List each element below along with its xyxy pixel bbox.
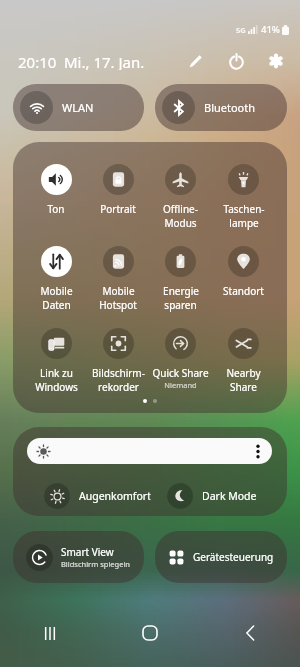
button[interactable]: Power [225, 52, 247, 70]
button[interactable]: WLAN [13, 84, 144, 131]
staticText: Link zu [40, 366, 73, 380]
staticText: Dark Mode [202, 489, 257, 503]
staticText: Quick Share [152, 366, 209, 380]
staticText: 20:10 [18, 52, 57, 70]
staticText: Offline- [163, 202, 198, 216]
staticText: Mi., 17. Jan. [64, 52, 145, 70]
staticText: Hotspot [99, 298, 137, 312]
staticText: lampe [229, 216, 259, 230]
button[interactable]: Brightness [27, 438, 272, 464]
staticText: Augenkomfort [79, 489, 151, 503]
button[interactable]: Nearby [212, 328, 275, 394]
button[interactable]: Settings [265, 52, 287, 70]
staticText: Bildschirm spiegeln [61, 559, 130, 569]
button[interactable]: Link zu [25, 328, 87, 394]
button[interactable]: Standort [212, 246, 275, 298]
staticText: Smart View [61, 545, 114, 559]
staticText: rekorder [98, 380, 139, 394]
staticText: sparen [164, 298, 197, 312]
staticText: Taschen- [223, 202, 265, 216]
button[interactable]: Offline- [149, 164, 212, 230]
staticText: Portrait [100, 202, 136, 216]
staticText: Mobile [102, 284, 135, 298]
staticText: 5G [236, 25, 246, 35]
button[interactable]: Bluetooth [155, 84, 287, 131]
button[interactable]: Dark Mode [167, 483, 257, 509]
staticText: Bildschirm- [92, 366, 145, 380]
button[interactable]: Mobile [87, 246, 149, 312]
staticText: WLAN [62, 100, 94, 115]
button[interactable]: Gerätesteuerung [155, 531, 287, 583]
button[interactable]: Smart View [13, 531, 144, 583]
staticText: Ton [47, 202, 65, 216]
button[interactable]: Quick Share [149, 328, 212, 390]
button[interactable]: Portrait [87, 164, 149, 216]
button[interactable]: Augenkomfort [44, 483, 151, 509]
staticText: Modus [164, 216, 197, 230]
staticText: Windows [35, 380, 78, 394]
button[interactable]: Taschen- [212, 164, 275, 230]
staticText: Mobile [40, 284, 73, 298]
staticText: Niemand [164, 380, 197, 390]
button[interactable]: Energie [149, 246, 212, 312]
staticText: Daten [42, 298, 71, 312]
staticText: Nearby [226, 366, 261, 380]
button[interactable]: Recents [0, 616, 100, 650]
button[interactable]: Home [100, 616, 200, 650]
button[interactable]: Ton [25, 164, 87, 216]
staticText: Bluetooth [204, 100, 256, 115]
button[interactable]: Bildschirm- [87, 328, 149, 394]
button[interactable]: Edit [185, 52, 207, 70]
staticText: Gerätesteuerung [193, 550, 274, 564]
button[interactable]: Mobile [25, 246, 87, 312]
staticText: Share [230, 380, 257, 394]
button[interactable]: Back [200, 616, 300, 650]
staticText: Standort [223, 284, 264, 298]
staticText: Energie [163, 284, 199, 298]
staticText: 41% [261, 23, 280, 36]
